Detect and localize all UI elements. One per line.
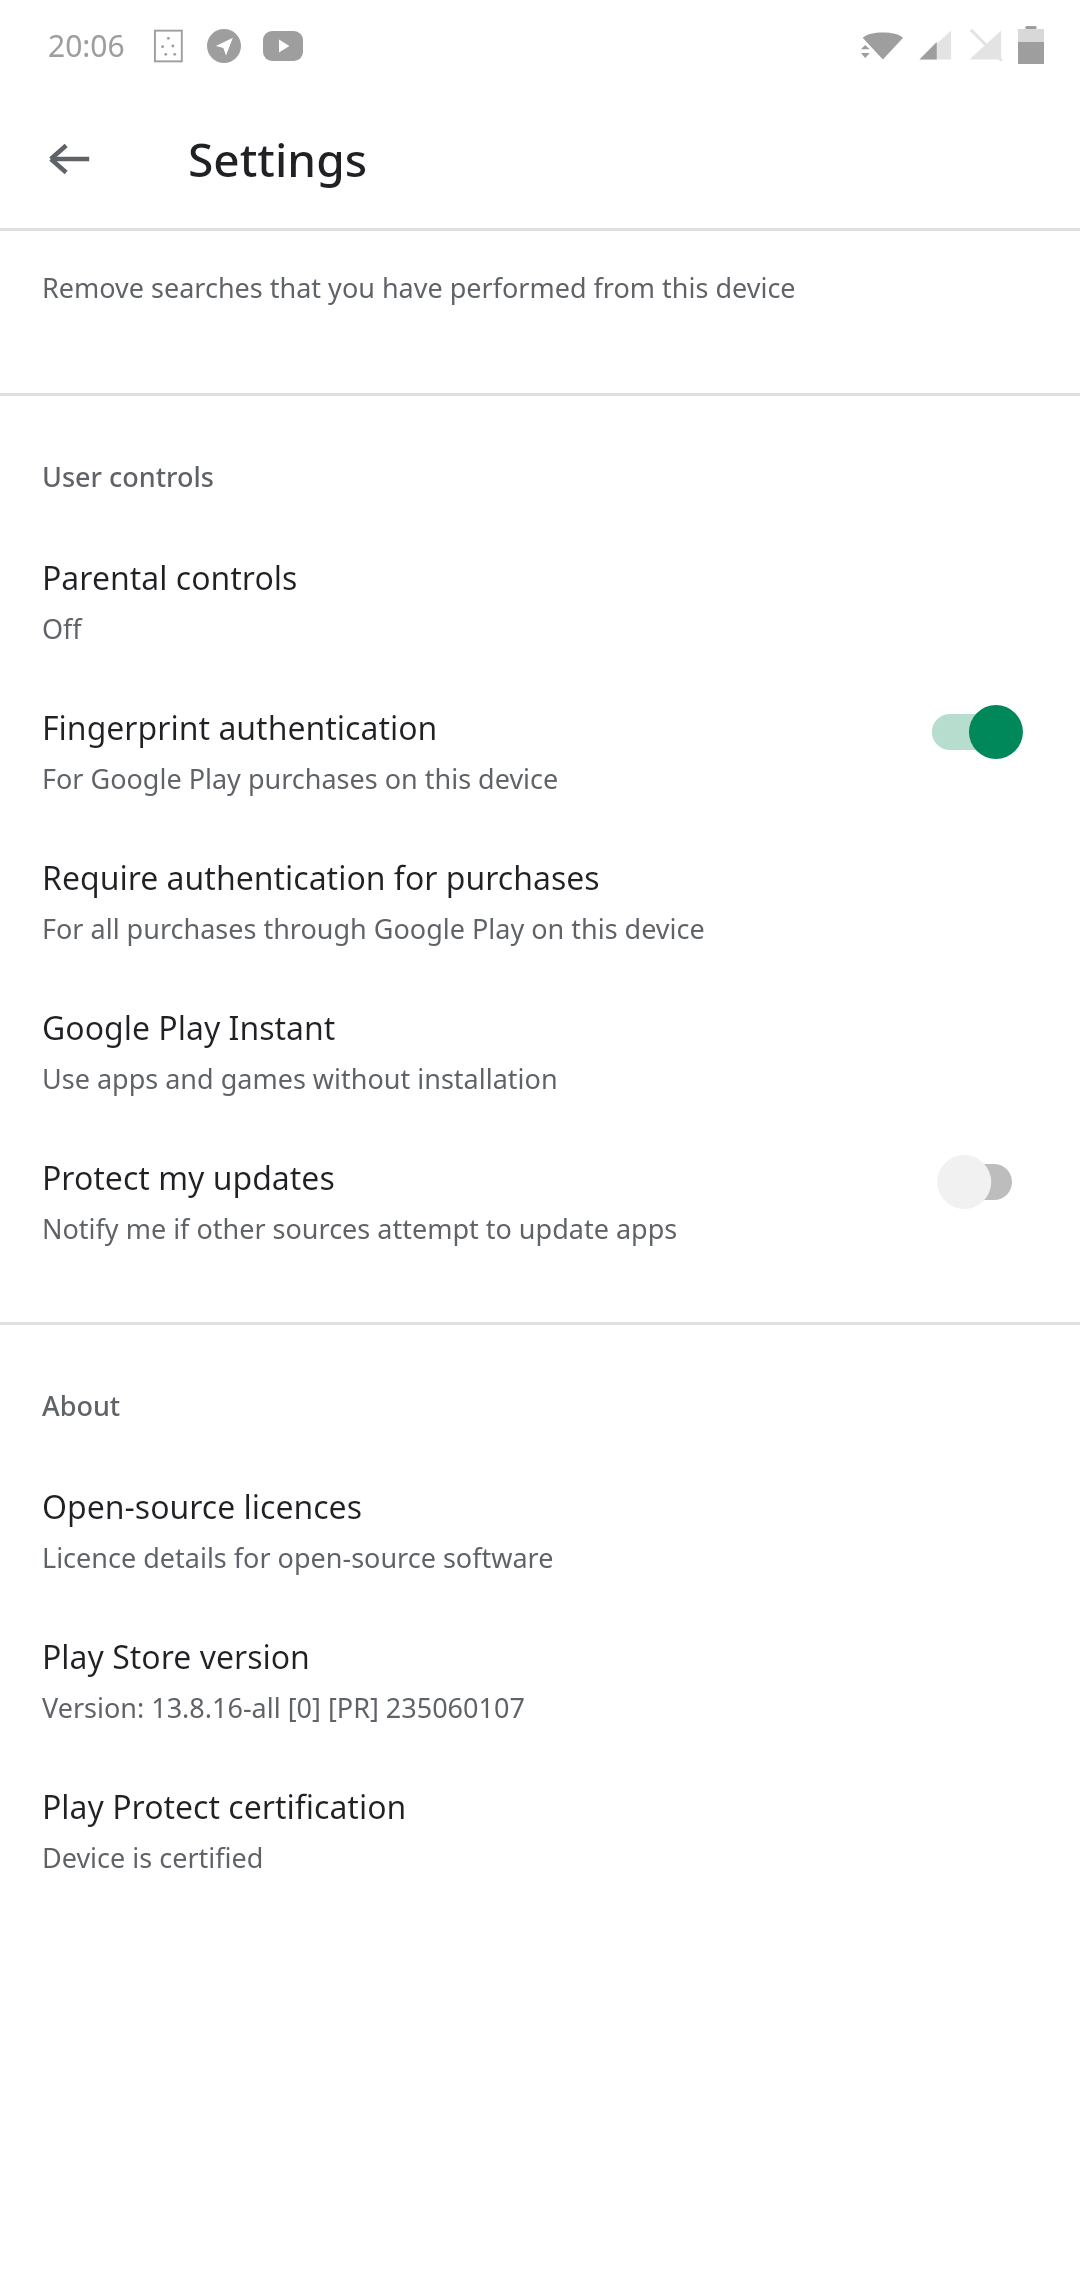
staticText: Parental controls [42, 556, 298, 600]
button[interactable]: Fingerprint authentication [0, 654, 1080, 804]
staticText: Remove searches that you have performed … [42, 269, 796, 306]
button[interactable]: Open-source licences [0, 1443, 1080, 1583]
button[interactable]: Require authentication for purchases [0, 804, 1080, 954]
button[interactable]: Play Store version [0, 1583, 1080, 1733]
button[interactable]: Google Play Instant [0, 954, 1080, 1104]
staticText: Settings [188, 128, 368, 191]
button[interactable]: Play Protect certification [0, 1733, 1080, 1883]
button[interactable]: Remove searches that you have performed … [0, 231, 1080, 393]
button[interactable]: Parental controls [0, 514, 1080, 654]
staticText: Open-source licences [42, 1485, 363, 1529]
staticText: Licence details for open-source software [42, 1539, 554, 1576]
staticText: Use apps and games without installation [42, 1060, 558, 1097]
staticText: 20:06 [48, 25, 125, 66]
staticText: Google Play Instant [42, 1006, 336, 1050]
staticText: Play Protect certification [42, 1785, 407, 1829]
staticText: For all purchases through Google Play on… [42, 910, 705, 947]
staticText: Version: 13.8.16-all [0] [PR] 235060107 [42, 1689, 525, 1726]
staticText: Device is certified [42, 1839, 264, 1876]
button[interactable]: Back [26, 115, 114, 203]
staticText: Protect my updates [42, 1156, 335, 1200]
staticText: User controls [42, 458, 214, 495]
button[interactable]: Toggle off [926, 1152, 1022, 1212]
staticText: Notify me if other sources attempt to up… [42, 1210, 678, 1247]
staticText: For Google Play purchases on this device [42, 760, 559, 797]
staticText: Require authentication for purchases [42, 856, 600, 900]
staticText: About [42, 1387, 121, 1424]
staticText: Fingerprint authentication [42, 706, 438, 750]
staticText: Off [42, 610, 82, 647]
staticText: Play Store version [42, 1635, 310, 1679]
button[interactable]: Toggle on [926, 702, 1022, 762]
button[interactable]: Protect my updates [0, 1104, 1080, 1254]
